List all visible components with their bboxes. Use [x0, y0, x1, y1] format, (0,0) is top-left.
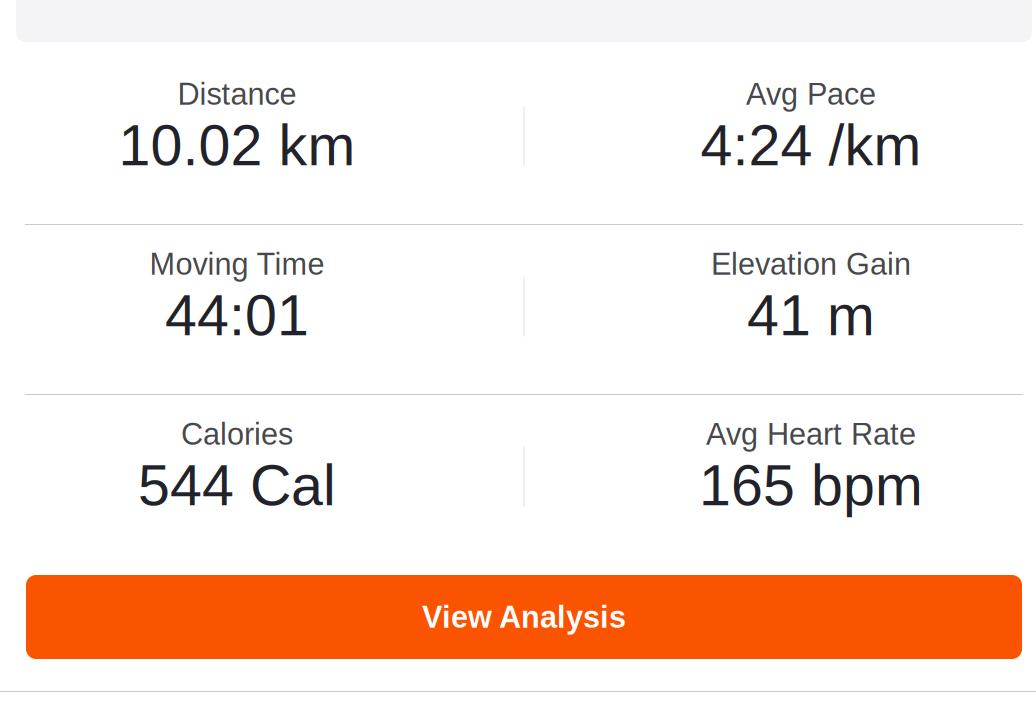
- staticText: 10.02 km: [118, 113, 355, 177]
- staticText: 4:24 /km: [700, 113, 921, 177]
- staticText: 165 bpm: [699, 453, 923, 517]
- staticText: View Analysis: [422, 600, 626, 634]
- staticText: Avg Heart Rate: [706, 417, 916, 451]
- staticText: 544 Cal: [138, 453, 336, 517]
- staticText: 41 m: [747, 283, 875, 347]
- staticText: Elevation Gain: [711, 247, 911, 281]
- staticText: Avg Pace: [746, 77, 876, 111]
- staticText: Distance: [177, 77, 296, 111]
- staticText: Moving Time: [149, 247, 324, 281]
- staticText: 44:01: [165, 283, 309, 347]
- button[interactable]: View Analysis: [26, 575, 1022, 659]
- staticText: Calories: [181, 417, 293, 451]
